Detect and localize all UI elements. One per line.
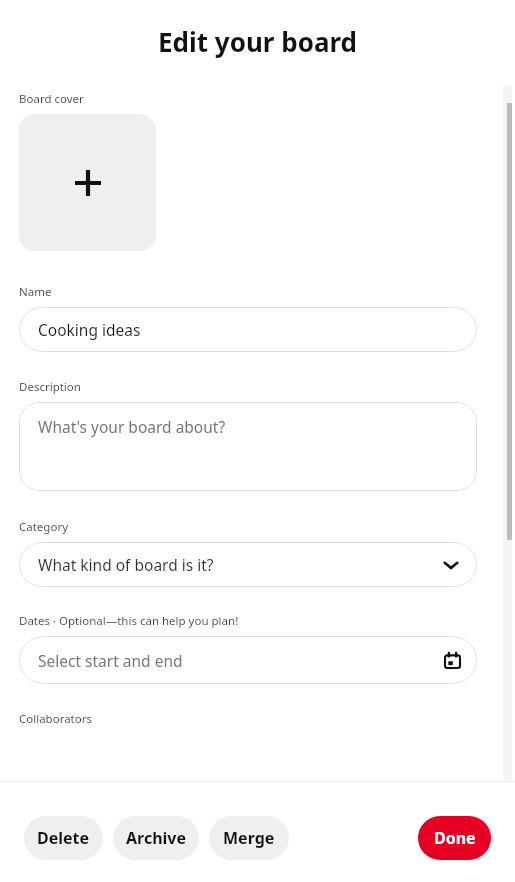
staticText: Cooking ideas [38, 319, 141, 340]
button[interactable]: What kind of board is it? [19, 542, 477, 587]
button[interactable]: Cooking ideas [19, 307, 477, 352]
staticText: Name [19, 284, 52, 300]
staticText: Description [19, 379, 81, 395]
button[interactable]: Done [418, 816, 491, 860]
staticText: What's your board about? [38, 416, 226, 437]
button[interactable]: What's your board about? [19, 402, 477, 491]
button[interactable]: Select start and end [19, 636, 477, 684]
staticText: Category [19, 519, 69, 535]
button[interactable]: Add board cover [19, 114, 156, 251]
staticText: Delete [37, 827, 90, 849]
staticText: Done [434, 827, 476, 849]
button[interactable]: Archive [113, 816, 199, 860]
staticText: Select start and end [38, 650, 183, 671]
staticText: Archive [126, 827, 187, 849]
button[interactable]: Delete [24, 816, 103, 860]
staticText: Merge [223, 827, 275, 849]
staticText: What kind of board is it? [38, 554, 214, 575]
staticText: Collaborators [19, 711, 92, 727]
button[interactable]: Merge [209, 816, 289, 860]
staticText: Board cover [19, 91, 84, 107]
staticText: Edit your board [0, 24, 515, 59]
staticText: Dates · Optional—this can help you plan! [19, 613, 239, 629]
